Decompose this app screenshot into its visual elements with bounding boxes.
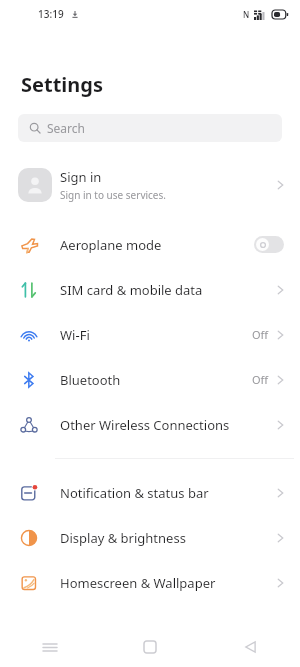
button[interactable]: Recent apps bbox=[0, 627, 100, 667]
staticText: Settings bbox=[21, 71, 103, 98]
button[interactable]: Bluetooth bbox=[0, 357, 300, 402]
staticText: Homescreen & Wallpaper bbox=[60, 574, 277, 592]
button[interactable]: Sign in bbox=[0, 160, 300, 210]
button[interactable]: Back bbox=[200, 627, 300, 667]
staticText: N bbox=[243, 9, 250, 20]
staticText: Other Wireless Connections bbox=[60, 416, 277, 434]
staticText: Display & brightness bbox=[60, 529, 277, 547]
staticText: Off bbox=[252, 327, 269, 342]
staticText: SIM card & mobile data bbox=[60, 281, 277, 299]
staticText: Off bbox=[252, 372, 269, 387]
staticText: Search bbox=[47, 120, 85, 136]
staticText: Sign in bbox=[60, 168, 102, 186]
button[interactable]: Search bbox=[18, 114, 282, 142]
button[interactable]: Wi-Fi bbox=[0, 312, 300, 357]
button[interactable]: Notification & status bar bbox=[0, 470, 300, 515]
staticText: Bluetooth bbox=[60, 371, 252, 389]
button[interactable]: Home bbox=[100, 627, 200, 667]
staticText: Sign in to use services. bbox=[60, 188, 166, 202]
button[interactable]: Aeroplane mode toggle bbox=[254, 236, 284, 253]
button[interactable]: SIM card & mobile data bbox=[0, 267, 300, 312]
button[interactable]: Display & brightness bbox=[0, 515, 300, 560]
staticText: 13:19 bbox=[38, 7, 64, 21]
staticText: Wi-Fi bbox=[60, 326, 252, 344]
staticText: Notification & status bar bbox=[60, 484, 277, 502]
button[interactable]: Other Wireless Connections bbox=[0, 402, 300, 447]
button[interactable]: Homescreen & Wallpaper bbox=[0, 560, 300, 605]
staticText: Aeroplane mode bbox=[60, 236, 254, 254]
button[interactable]: Aeroplane mode bbox=[0, 222, 300, 267]
